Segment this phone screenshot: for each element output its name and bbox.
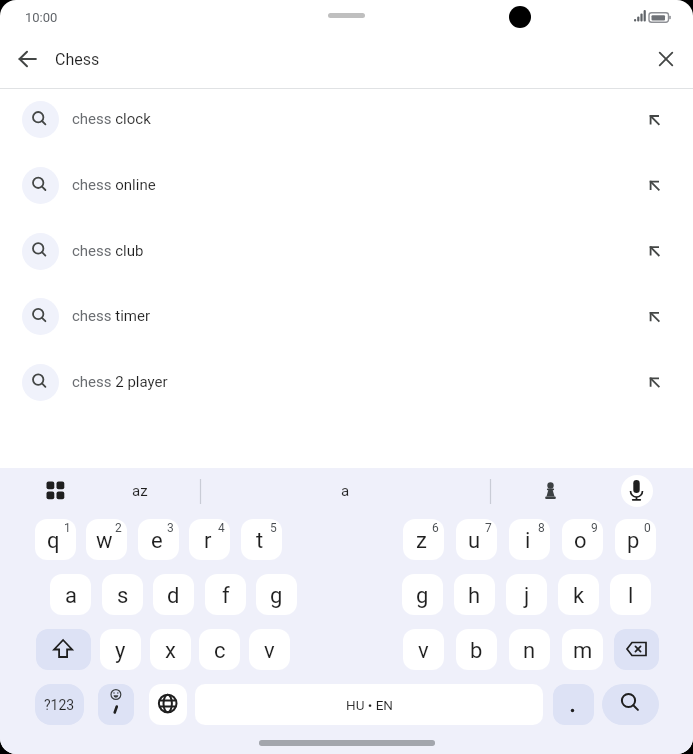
staticText: 0 [644,521,651,535]
button[interactable]: chess 2 player [0,349,693,414]
staticText: b [470,638,483,664]
staticText: a [341,482,350,500]
staticText: 10:00 [25,10,58,25]
button[interactable] [149,684,187,725]
staticText: w [96,528,113,554]
staticText: g [270,583,283,609]
staticText: a [65,583,77,609]
button[interactable]: chess timer [0,283,693,348]
staticText: p [627,528,640,554]
button[interactable]: HU • EN [195,684,543,725]
staticText: e [151,528,163,554]
button[interactable] [553,684,594,725]
button[interactable]: t [241,519,282,560]
button[interactable]: p [615,519,656,560]
button[interactable]: y [100,629,141,670]
staticText: Chess [55,50,100,69]
button[interactable]: g [402,574,443,615]
button[interactable]: ?123 [35,684,84,725]
button[interactable]: c [199,629,240,670]
staticText: i [525,528,531,554]
button[interactable]: chess club [0,218,693,283]
staticText: 3 [167,521,174,535]
staticText: 8 [538,521,545,535]
staticText: 2 [115,521,122,535]
button[interactable]: a [255,475,435,507]
staticText: HU • EN [346,697,393,713]
staticText: n [523,638,536,664]
staticText: chess club [72,242,144,260]
button[interactable]: chess clock [0,86,693,151]
button[interactable] [40,475,72,507]
button[interactable] [602,684,659,725]
button[interactable]: d [153,574,194,615]
staticText: f [222,583,230,609]
button[interactable]: g [256,574,297,615]
staticText: 9 [591,521,598,535]
staticText: m [573,638,593,664]
button[interactable]: e [138,519,179,560]
staticText: chess 2 player [72,373,168,391]
staticText: u [468,528,481,554]
button[interactable]: l [610,574,651,615]
staticText: v [418,638,429,664]
button[interactable]: k [558,574,599,615]
button[interactable]: x [150,629,191,670]
button[interactable]: f [205,574,246,615]
button[interactable]: z [403,519,444,560]
staticText: chess online [72,176,156,194]
button[interactable]: m [562,629,603,670]
button[interactable]: v [249,629,290,670]
button[interactable]: r [189,519,230,560]
staticText: c [214,638,226,664]
staticText: o [574,528,587,554]
button[interactable]: n [509,629,550,670]
staticText: s [117,583,129,609]
staticText: z [416,528,427,554]
button[interactable]: j [506,574,547,615]
button[interactable]: chess online [0,152,693,217]
staticText: h [468,583,481,609]
button[interactable]: q [35,519,76,560]
button[interactable] [534,475,566,507]
staticText: 5 [270,521,277,535]
button[interactable] [98,684,134,725]
staticText: x [165,638,176,664]
staticText: 6 [432,521,439,535]
staticText: chess clock [72,110,151,128]
button[interactable]: b [456,629,497,670]
staticText: ?123 [44,697,75,713]
button[interactable]: a [50,574,91,615]
button[interactable] [10,41,46,77]
button[interactable] [36,629,91,670]
staticText: chess timer [72,307,151,325]
staticText: 1 [64,521,71,535]
staticText: k [573,583,585,609]
button[interactable]: o [562,519,603,560]
button[interactable]: s [102,574,143,615]
staticText: 7 [485,521,492,535]
button[interactable]: i [509,519,550,560]
button[interactable]: v [403,629,444,670]
staticText: j [524,583,530,609]
staticText: az [132,482,148,500]
staticText: 4 [218,521,225,535]
button[interactable]: az [110,475,170,507]
staticText: v [264,638,275,664]
staticText: l [628,583,634,609]
button[interactable] [614,629,659,670]
button[interactable] [621,475,653,507]
button[interactable]: h [454,574,495,615]
staticText: y [115,638,126,664]
staticText: d [167,583,180,609]
staticText: q [47,528,60,554]
staticText: g [416,583,429,609]
staticText: r [204,528,212,554]
button[interactable]: w [86,519,127,560]
button[interactable]: u [456,519,497,560]
staticText: t [256,528,264,554]
button[interactable] [648,41,684,77]
